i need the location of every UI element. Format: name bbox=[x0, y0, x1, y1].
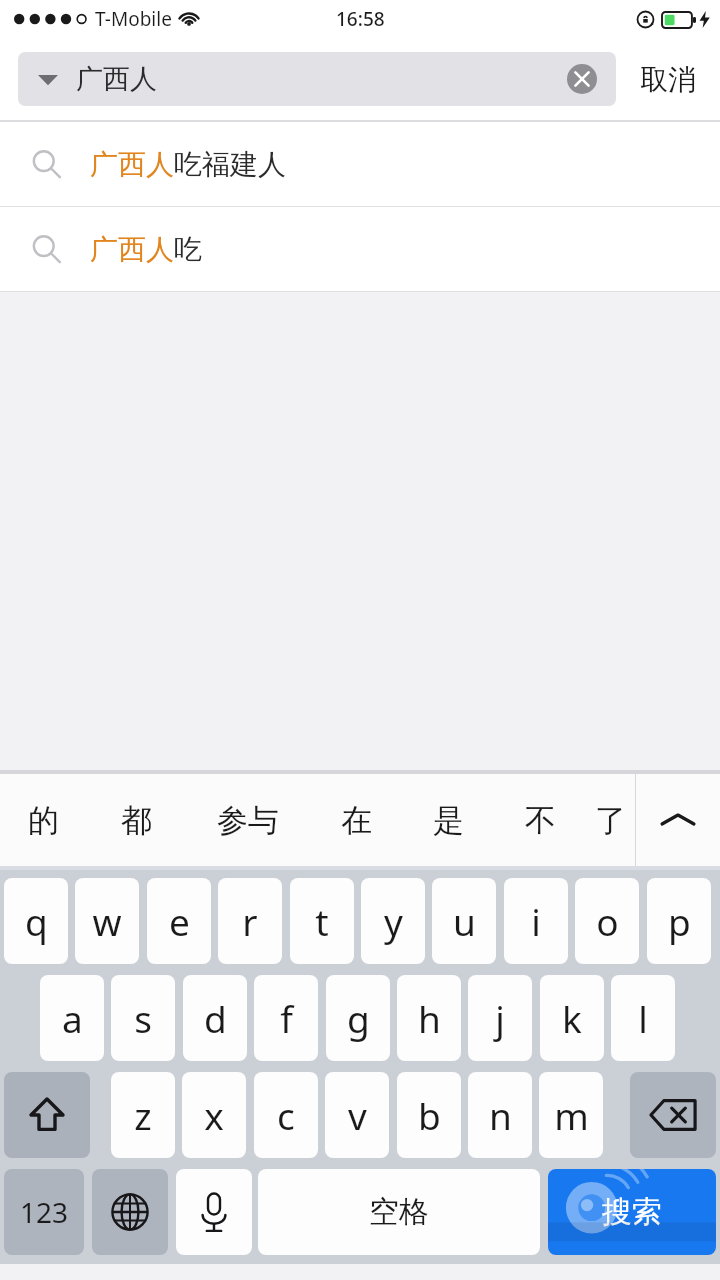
staticText: 了 bbox=[595, 801, 626, 840]
staticText: q bbox=[25, 896, 48, 946]
staticText: 不 bbox=[525, 801, 556, 840]
button[interactable]: a bbox=[40, 975, 104, 1061]
button[interactable]: 参与 bbox=[186, 774, 310, 866]
button[interactable]: 123 bbox=[4, 1169, 84, 1255]
staticText: w bbox=[92, 896, 122, 946]
button[interactable]: d bbox=[183, 975, 247, 1061]
button[interactable]: 广西人吃 bbox=[0, 207, 720, 291]
staticText: u bbox=[453, 896, 476, 946]
button[interactable]: Clear text bbox=[562, 59, 602, 99]
button[interactable]: Delete bbox=[630, 1072, 716, 1158]
button[interactable]: p bbox=[647, 878, 711, 964]
staticText: o bbox=[596, 896, 619, 946]
staticText: m bbox=[554, 1090, 589, 1140]
staticText: i bbox=[531, 896, 541, 946]
button[interactable]: Voice input bbox=[176, 1169, 252, 1255]
staticText: v bbox=[348, 1090, 367, 1140]
button[interactable]: c bbox=[254, 1072, 318, 1158]
button[interactable]: Switch keyboard language bbox=[92, 1169, 168, 1255]
button[interactable]: l bbox=[611, 975, 675, 1061]
staticText: p bbox=[668, 896, 691, 946]
staticText: 空格 bbox=[369, 1193, 429, 1231]
staticText: 广西人吃福建人 bbox=[90, 147, 286, 182]
button[interactable]: k bbox=[540, 975, 604, 1061]
staticText: g bbox=[347, 993, 370, 1043]
staticText: 在 bbox=[341, 801, 372, 840]
staticText: t bbox=[315, 896, 329, 946]
staticText: 的 bbox=[28, 801, 59, 840]
button[interactable]: v bbox=[325, 1072, 389, 1158]
button[interactable]: u bbox=[432, 878, 496, 964]
button[interactable]: 不 bbox=[494, 774, 586, 866]
staticText: x bbox=[204, 1090, 224, 1140]
button[interactable]: w bbox=[75, 878, 139, 964]
staticText: d bbox=[204, 993, 227, 1043]
button[interactable]: h bbox=[397, 975, 461, 1061]
staticText: 123 bbox=[20, 1193, 69, 1231]
staticText: 取消 bbox=[640, 62, 696, 97]
staticText: r bbox=[242, 896, 258, 946]
button[interactable]: b bbox=[397, 1072, 461, 1158]
button[interactable]: i bbox=[504, 878, 568, 964]
button[interactable]: 空格 bbox=[258, 1169, 540, 1255]
button[interactable]: 广西人 bbox=[18, 52, 616, 106]
button[interactable]: n bbox=[468, 1072, 532, 1158]
staticText: 都 bbox=[121, 801, 152, 840]
button[interactable]: 了 bbox=[586, 774, 635, 866]
button[interactable]: q bbox=[4, 878, 68, 964]
button[interactable]: j bbox=[468, 975, 532, 1061]
staticText: l bbox=[638, 993, 648, 1043]
button[interactable]: Shift bbox=[4, 1072, 90, 1158]
staticText: k bbox=[562, 993, 582, 1043]
staticText: 广西人 bbox=[76, 62, 157, 96]
staticText: h bbox=[418, 993, 441, 1043]
button[interactable]: 的 bbox=[0, 774, 86, 866]
staticText: 搜索 bbox=[602, 1193, 662, 1231]
button[interactable]: 在 bbox=[310, 774, 402, 866]
button[interactable]: f bbox=[254, 975, 318, 1061]
staticText: 参与 bbox=[217, 801, 279, 840]
staticText: c bbox=[277, 1090, 295, 1140]
staticText: a bbox=[62, 993, 83, 1043]
button[interactable]: s bbox=[111, 975, 175, 1061]
staticText: 是 bbox=[433, 801, 464, 840]
button[interactable]: 是 bbox=[402, 774, 494, 866]
button[interactable]: x bbox=[182, 1072, 246, 1158]
button[interactable]: g bbox=[326, 975, 390, 1061]
staticText: z bbox=[134, 1090, 152, 1140]
staticText: e bbox=[169, 896, 190, 946]
button[interactable]: 取消 bbox=[616, 49, 720, 109]
button[interactable]: r bbox=[218, 878, 282, 964]
button[interactable]: Expand candidates bbox=[636, 774, 720, 866]
staticText: s bbox=[134, 993, 152, 1043]
staticText: n bbox=[489, 1090, 512, 1140]
staticText: f bbox=[280, 993, 293, 1043]
button[interactable]: m bbox=[539, 1072, 603, 1158]
staticText: 16:58 bbox=[336, 6, 385, 32]
staticText: T-Mobile bbox=[95, 6, 172, 32]
button[interactable]: 都 bbox=[86, 774, 186, 866]
button[interactable]: 广西人吃福建人 bbox=[0, 122, 720, 206]
staticText: y bbox=[384, 896, 403, 946]
button[interactable]: o bbox=[575, 878, 639, 964]
button[interactable]: y bbox=[361, 878, 425, 964]
staticText: j bbox=[495, 993, 505, 1043]
staticText: 广西人吃 bbox=[90, 232, 202, 267]
button[interactable]: 搜索 bbox=[548, 1169, 716, 1255]
button[interactable]: t bbox=[290, 878, 354, 964]
button[interactable]: z bbox=[111, 1072, 175, 1158]
button[interactable]: e bbox=[147, 878, 211, 964]
staticText: b bbox=[418, 1090, 441, 1140]
